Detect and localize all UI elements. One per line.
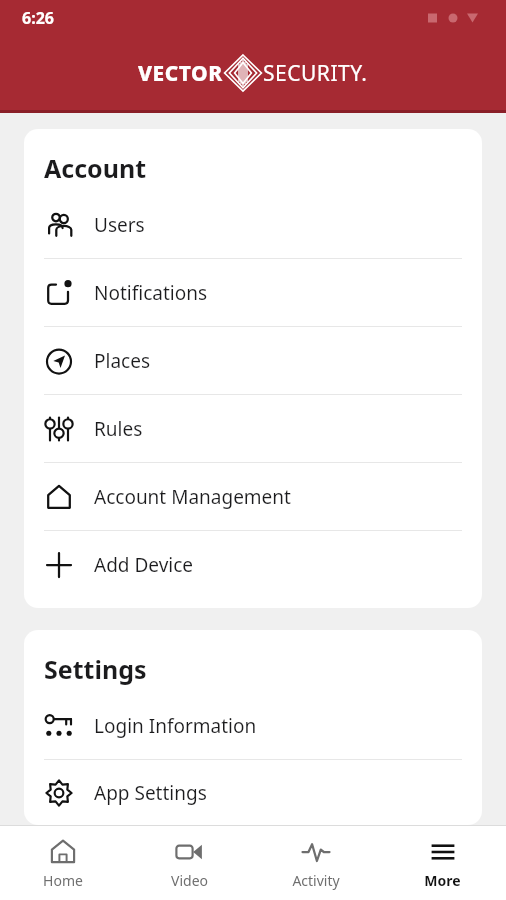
- staticText: 6:26: [22, 7, 54, 29]
- staticText: Home: [43, 871, 83, 890]
- button[interactable]: Activity: [252, 826, 379, 900]
- staticText: Add Device: [94, 552, 194, 578]
- button[interactable]: Video: [126, 826, 252, 900]
- button[interactable]: Notifications: [24, 259, 482, 326]
- staticText: Account: [44, 151, 147, 185]
- button[interactable]: Home: [0, 826, 126, 900]
- staticText: Settings: [44, 652, 147, 686]
- staticText: SECURITY.: [263, 59, 368, 88]
- staticText: Places: [94, 348, 150, 374]
- staticText: VECTOR: [138, 59, 223, 88]
- staticText: Users: [94, 212, 145, 238]
- button[interactable]: App Settings: [24, 760, 482, 825]
- staticText: Rules: [94, 416, 143, 442]
- staticText: App Settings: [94, 780, 207, 806]
- button[interactable]: Add Device: [24, 531, 482, 598]
- staticText: Activity: [292, 871, 340, 890]
- staticText: Video: [171, 871, 208, 890]
- button[interactable]: Users: [24, 191, 482, 258]
- staticText: More: [424, 871, 461, 890]
- button[interactable]: Login Information: [24, 692, 482, 759]
- button[interactable]: Account Management: [24, 463, 482, 530]
- button[interactable]: Places: [24, 327, 482, 394]
- staticText: Login Information: [94, 713, 257, 739]
- button[interactable]: Rules: [24, 395, 482, 462]
- button[interactable]: More: [379, 826, 506, 900]
- staticText: Notifications: [94, 280, 208, 306]
- staticText: Account Management: [94, 484, 291, 510]
